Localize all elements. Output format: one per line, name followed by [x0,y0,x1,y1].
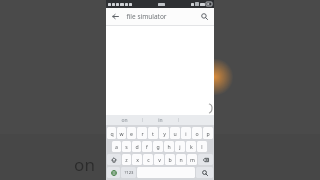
staticText: w [119,130,124,137]
staticText: j [179,143,181,150]
staticText: a [115,143,118,150]
staticText: ?123 [124,170,134,176]
staticText: f [146,143,148,150]
button[interactable]: b [165,154,175,165]
button[interactable]: Search [196,167,213,178]
button[interactable]: g [153,141,163,152]
staticText: g [156,143,160,150]
button[interactable]: h [164,141,174,152]
button[interactable]: z [122,154,131,165]
staticText: m [190,156,195,163]
button[interactable]: i [181,127,191,139]
staticText: y [163,130,166,137]
button[interactable]: v [154,154,164,165]
staticText: s [125,143,128,150]
button[interactable]: j [175,141,185,152]
button[interactable]: t [148,127,158,139]
button[interactable]: in [143,115,178,125]
button[interactable]: u [170,127,180,139]
staticText: k [190,143,193,150]
staticText: r [141,130,144,137]
button[interactable]: Change language [107,167,120,178]
staticText: h [167,143,171,150]
button[interactable]: r [137,127,147,139]
button[interactable]: s [122,141,131,152]
staticText: q [110,130,114,137]
button[interactable]: y [159,127,169,139]
button[interactable]: w [117,127,126,139]
button[interactable]: d [132,141,141,152]
button[interactable]: file simulator [126,8,198,25]
staticText: n [179,156,183,163]
button[interactable]: n [176,154,186,165]
button[interactable]: on [106,115,142,125]
button[interactable]: q [107,127,116,139]
staticText: p [206,130,210,137]
button[interactable]: ?123 [121,167,136,178]
staticText: d [135,143,139,150]
button[interactable]: o [192,127,202,139]
button[interactable]: Search [198,10,211,23]
button[interactable]: c [143,154,153,165]
staticText: u [173,130,177,137]
button[interactable]: x [132,154,142,165]
button[interactable]: e [127,127,136,139]
button[interactable]: k [186,141,196,152]
staticText: file simulator [126,12,167,21]
staticText: i [185,130,187,137]
staticText: t [152,130,154,137]
button[interactable]: Shift [107,154,121,165]
staticText: v [158,156,161,163]
staticText: l [201,143,203,150]
button[interactable]: l [197,141,207,152]
staticText: x [136,156,139,163]
staticText: b [168,156,172,163]
button[interactable]: Back [109,10,122,23]
button[interactable]: m [187,154,197,165]
staticText: in [158,117,163,124]
staticText: c [147,156,150,163]
staticText: o [195,130,199,137]
button[interactable]: Backspace [198,154,213,165]
staticText: on [121,117,128,124]
button[interactable]: f [142,141,152,152]
staticText: on [74,153,95,176]
staticText: z [125,156,128,163]
button[interactable]: p [203,127,213,139]
staticText: e [130,130,133,137]
button[interactable]: a [112,141,121,152]
